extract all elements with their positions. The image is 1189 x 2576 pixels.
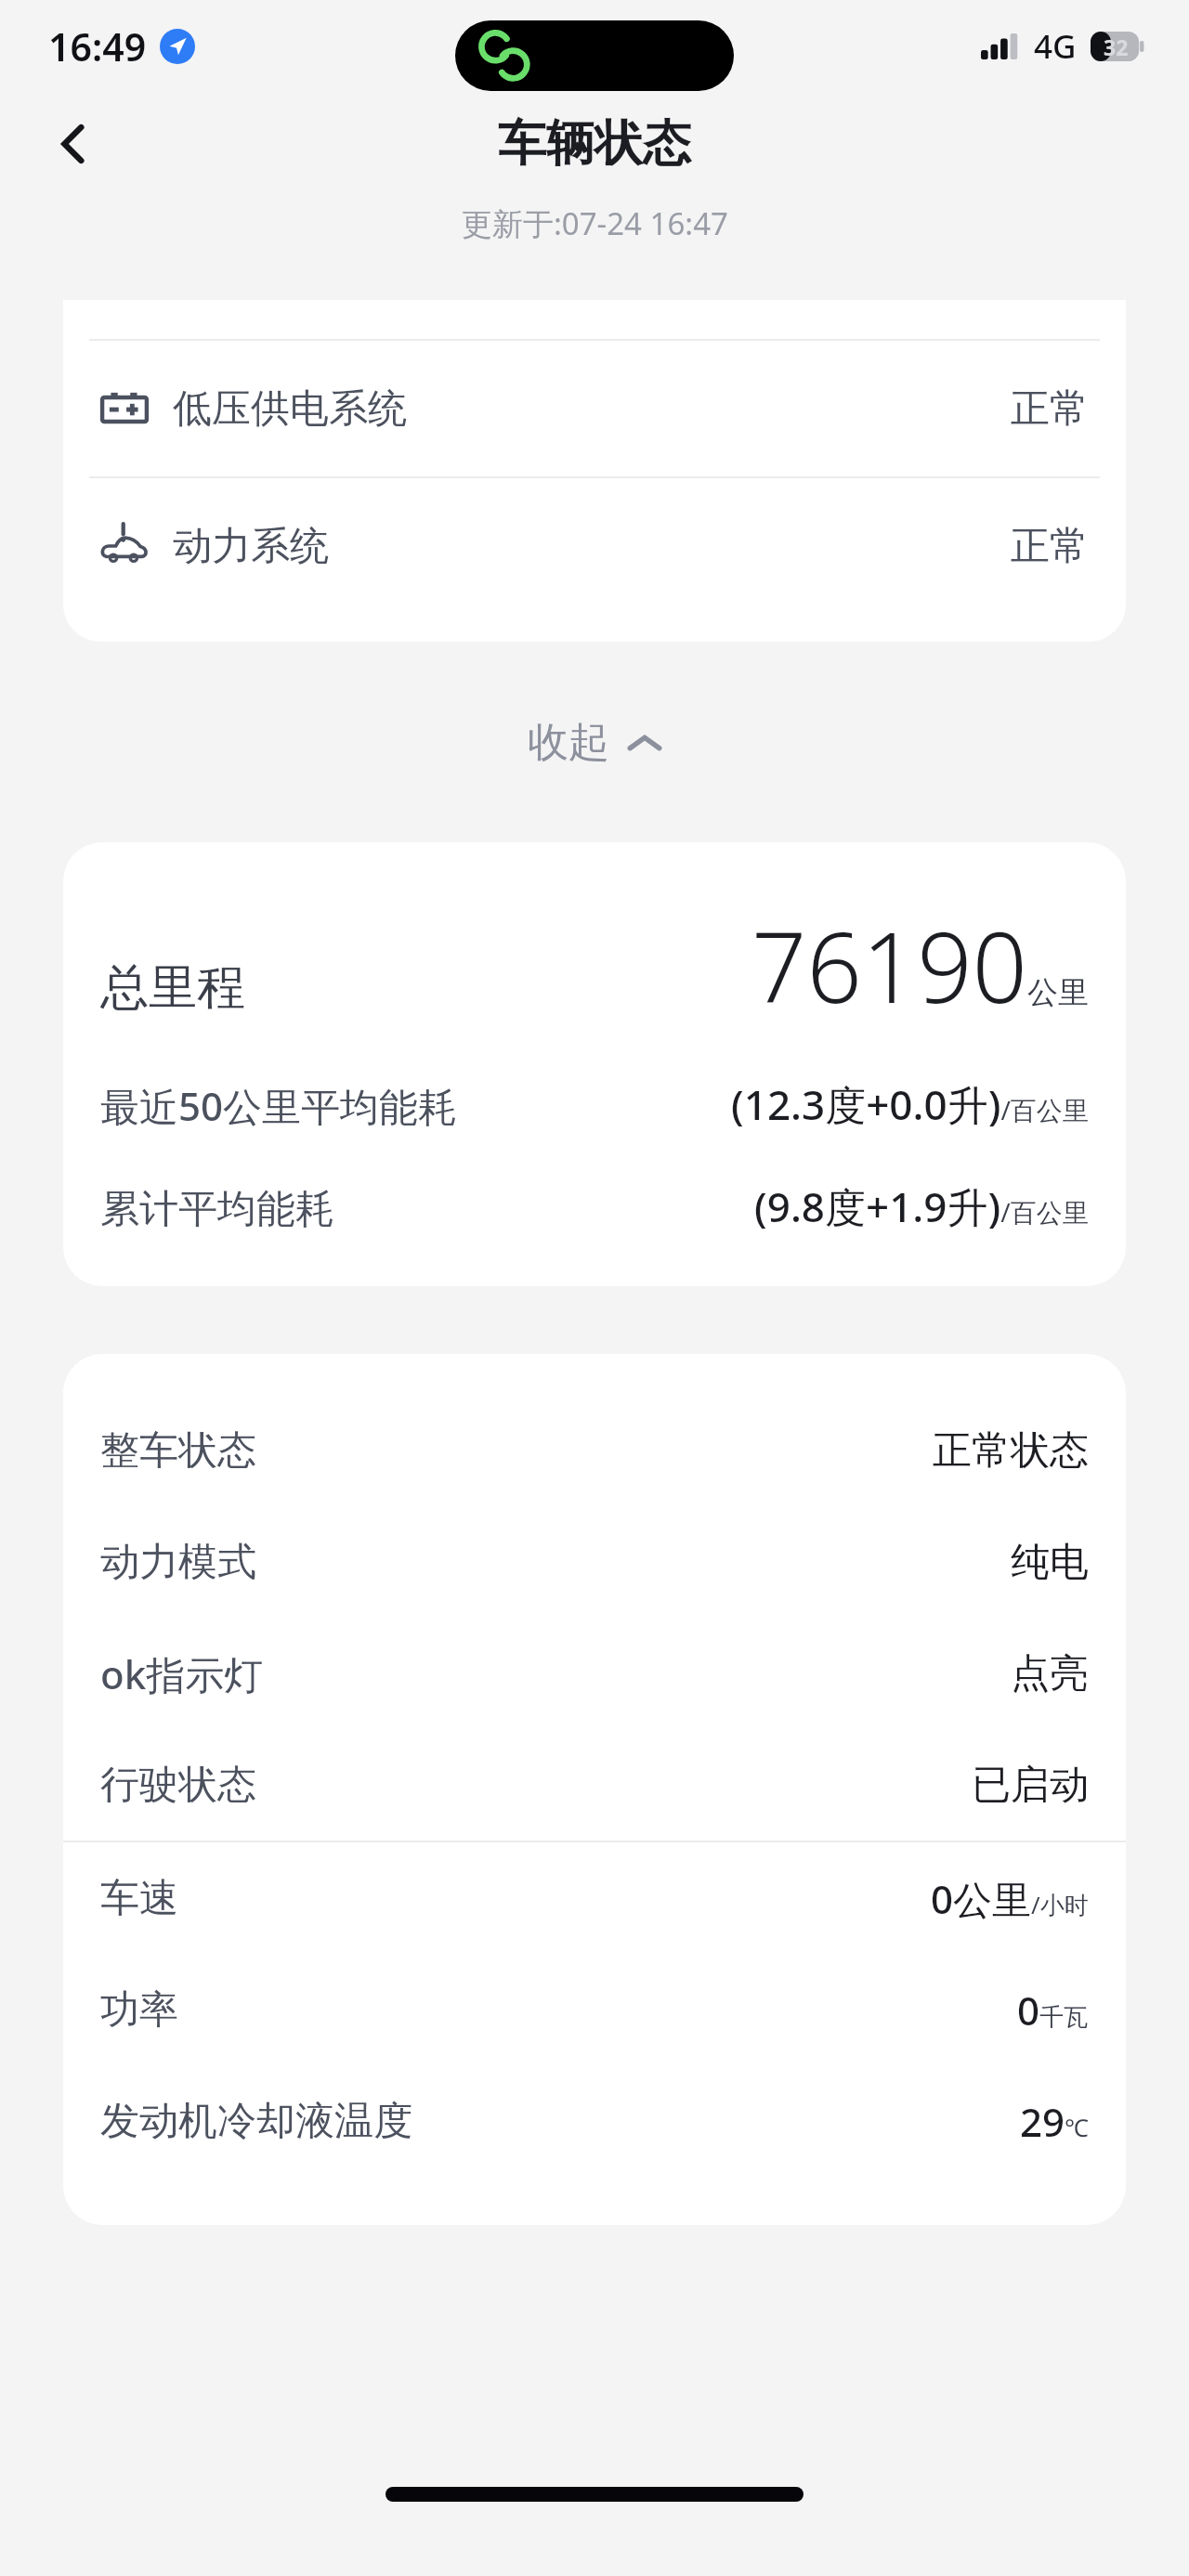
button[interactable]: 动力模式 bbox=[63, 1506, 1126, 1618]
staticText: (9.8度+1.9升)/百公里 bbox=[754, 1178, 1089, 1234]
staticText: 32 bbox=[1104, 33, 1129, 61]
button[interactable]: 行驶状态 bbox=[63, 1729, 1126, 1841]
button[interactable]: 累计平均能耗 bbox=[100, 1178, 1089, 1234]
staticText: 正常 bbox=[1011, 522, 1089, 571]
staticText: 0公里/小时 bbox=[931, 1872, 1089, 1925]
staticText: 29℃ bbox=[1020, 2095, 1089, 2148]
staticText: 整车状态 bbox=[100, 1426, 256, 1476]
staticText: 车辆状态 bbox=[498, 113, 691, 175]
staticText: 行驶状态 bbox=[100, 1761, 256, 1810]
staticText: 更新于:07-24 16:47 bbox=[462, 202, 728, 244]
staticText: 动力模式 bbox=[100, 1538, 256, 1587]
button[interactable]: Back bbox=[28, 98, 121, 190]
button[interactable]: 收起 bbox=[490, 695, 699, 790]
staticText: 动力系统 bbox=[173, 522, 329, 571]
button[interactable]: 功率 bbox=[63, 1954, 1126, 2065]
staticText: 车速 bbox=[100, 1874, 178, 1923]
staticText: 76190公里 bbox=[751, 900, 1089, 1032]
button[interactable]: 最近50公里平均能耗 bbox=[100, 1076, 1089, 1132]
button[interactable]: 发动机冷却液温度 bbox=[63, 2065, 1126, 2177]
button[interactable]: 低压供电系统 bbox=[63, 341, 1126, 476]
staticText: 功率 bbox=[100, 1985, 178, 2035]
staticText: 已启动 bbox=[972, 1761, 1089, 1810]
staticText: 点亮 bbox=[1011, 1649, 1089, 1698]
button[interactable]: 车速 bbox=[63, 1842, 1126, 1954]
staticText: (12.3度+0.0升)/百公里 bbox=[731, 1076, 1089, 1132]
staticText: 正常状态 bbox=[933, 1426, 1089, 1476]
button[interactable]: 整车状态 bbox=[63, 1395, 1126, 1506]
button[interactable]: ok指示灯 bbox=[63, 1618, 1126, 1729]
staticText: 16:49 bbox=[48, 20, 147, 72]
staticText: 纯电 bbox=[1011, 1538, 1089, 1587]
button[interactable]: 动力系统 bbox=[63, 478, 1126, 614]
staticText: 收起 bbox=[528, 717, 609, 768]
staticText: 总里程 bbox=[100, 957, 245, 1019]
staticText: 正常 bbox=[1011, 384, 1089, 434]
staticText: 0千瓦 bbox=[1017, 1984, 1089, 2036]
staticText: 发动机冷却液温度 bbox=[100, 2097, 412, 2146]
button[interactable]: 总里程 bbox=[100, 900, 1089, 1032]
staticText: ok指示灯 bbox=[100, 1647, 264, 1700]
staticText: 低压供电系统 bbox=[173, 384, 407, 434]
staticText: 最近50公里平均能耗 bbox=[100, 1079, 458, 1132]
staticText: 累计平均能耗 bbox=[100, 1185, 334, 1234]
staticText: 4G bbox=[1034, 24, 1077, 69]
